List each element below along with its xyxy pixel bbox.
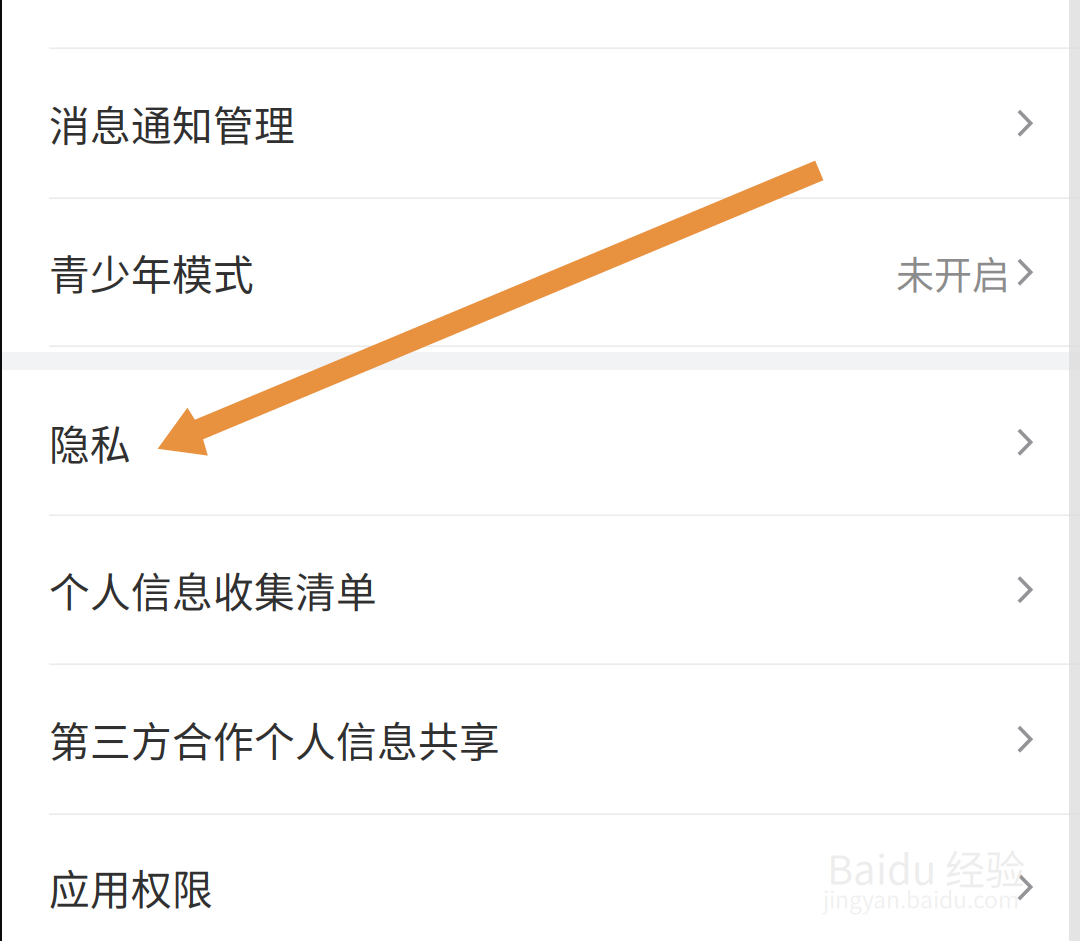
staticText: 未开启 (896, 245, 1010, 300)
button[interactable] (0, 0, 1080, 49)
button[interactable]: 第三方合作个人信息共享 (0, 665, 1080, 813)
button[interactable]: 个人信息收集清单 (0, 516, 1080, 663)
button[interactable]: 应用权限 (0, 815, 1080, 941)
button[interactable]: 隐私 (0, 370, 1080, 514)
staticText: 青少年模式 (49, 243, 254, 302)
staticText: 第三方合作个人信息共享 (49, 710, 500, 769)
staticText: 应用权限 (49, 858, 213, 916)
button[interactable]: 消息通知管理 (0, 49, 1080, 197)
staticText: 个人信息收集清单 (49, 560, 377, 619)
staticText: 消息通知管理 (49, 94, 295, 153)
staticText: jingyan.baidu.com (823, 882, 1019, 915)
staticText: Baidu 经验 (827, 838, 1025, 896)
staticText: 隐私 (49, 413, 131, 472)
button[interactable]: 青少年模式 (0, 199, 1080, 345)
